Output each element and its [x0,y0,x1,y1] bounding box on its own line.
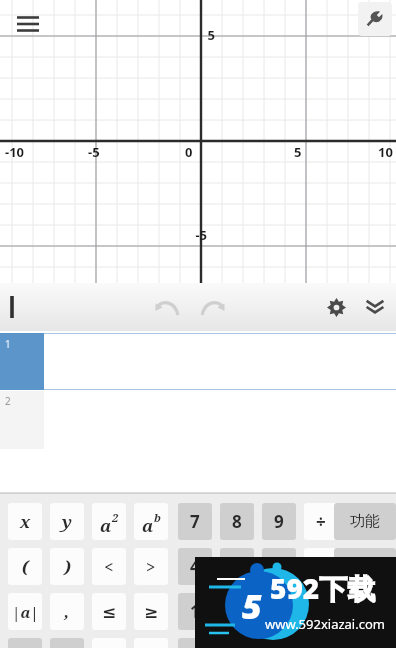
button[interactable]: a [134,503,168,540]
staticText: > [146,555,156,578]
button[interactable]: 1 [0,333,396,390]
staticText: 2 [112,510,119,525]
button[interactable]: < [92,548,126,585]
button[interactable] [262,548,296,585]
button[interactable]: ( [8,548,42,585]
button[interactable] [334,548,396,585]
staticText: 5 [242,583,262,629]
staticText: 2 [5,394,11,408]
button[interactable]: |a| [8,593,42,630]
button[interactable]: ÷ [304,503,338,540]
staticText: ) [64,555,71,578]
staticText: 7 [190,510,200,533]
staticText: a [142,514,154,537]
button[interactable]: ≥ [134,593,168,630]
staticText: a [100,514,112,537]
staticText: 0 [185,143,203,161]
staticText: 1 [5,337,11,351]
staticText: 8 [232,510,242,533]
staticText: 5 [294,143,312,161]
staticText: < [104,555,114,578]
button[interactable]: 1 [178,593,212,630]
button[interactable]: ≤ [92,593,126,630]
button[interactable] [220,593,254,630]
staticText: ( [22,555,29,578]
staticText: |a| [12,602,39,622]
staticText: 功能 [350,512,380,531]
staticText: ≤ [102,602,117,622]
button[interactable]: Collapse [357,283,393,331]
button[interactable]: 9 [262,503,296,540]
button[interactable]: 4 [178,548,212,585]
button[interactable]: > [134,548,168,585]
button[interactable]: Undo [147,283,187,331]
button[interactable] [178,638,212,648]
button[interactable] [304,548,338,585]
staticText: 9 [274,510,284,533]
button[interactable]: x [8,503,42,540]
staticText: -5 [88,143,118,161]
button[interactable]: 7 [178,503,212,540]
staticText: 4 [190,555,200,578]
staticText: b [154,510,161,525]
staticText: -5 [178,226,207,244]
button[interactable]: Redo [193,283,233,331]
button[interactable] [304,593,338,630]
button[interactable]: Menu [12,8,44,40]
button[interactable]: y [50,503,84,540]
button[interactable]: ) [50,548,84,585]
button[interactable]: , [50,593,84,630]
button[interactable] [220,638,254,648]
button[interactable]: Settings [319,283,353,331]
staticText: , [64,600,70,623]
button[interactable] [262,593,296,630]
button[interactable] [262,638,296,648]
staticText: -10 [5,143,39,161]
button[interactable]: Tools [358,2,392,36]
staticText: 1 [190,600,200,623]
staticText: y [62,510,72,533]
staticText: ≥ [144,602,159,622]
button[interactable]: 2 [0,391,396,449]
button[interactable] [334,593,396,630]
staticText: www.592xiazai.com [265,615,385,633]
staticText: ÷ [316,510,326,533]
button[interactable] [220,548,254,585]
button[interactable]: 8 [220,503,254,540]
staticText: 10 [378,143,396,161]
button[interactable]: a [92,503,126,540]
button[interactable]: 功能 [334,503,396,540]
staticText: 592下载 [270,569,376,607]
staticText: 5 [186,26,215,44]
staticText: x [20,510,31,533]
